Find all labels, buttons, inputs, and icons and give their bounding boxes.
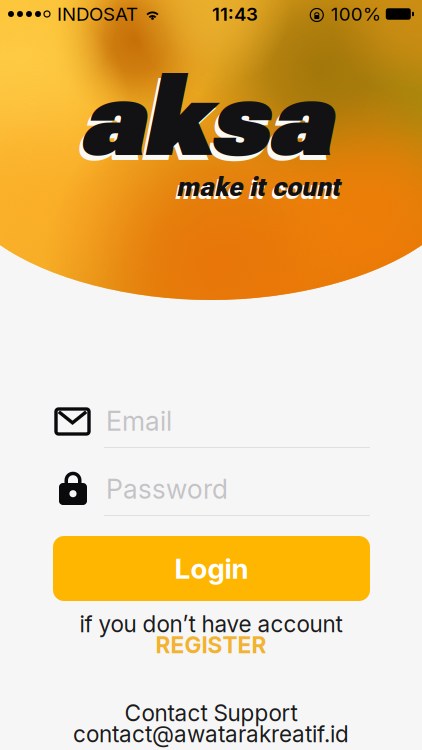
staticText: if you don’t have account	[79, 610, 342, 638]
staticText: 100%	[331, 3, 381, 25]
staticText: Login	[174, 552, 248, 585]
staticText: Contact Support	[124, 699, 297, 727]
staticText: make it count	[176, 171, 340, 203]
staticText: contact@awatarakreatif.id	[73, 720, 349, 748]
button[interactable]: REGISTER	[0, 634, 422, 656]
staticText: make it count	[174, 174, 338, 206]
staticText: Email	[106, 405, 172, 437]
staticText: INDOSAT	[57, 3, 138, 25]
staticText: aksa	[75, 54, 327, 188]
staticText: 11:43	[212, 3, 258, 25]
staticText: REGISTER	[155, 631, 266, 659]
staticText: aksa	[79, 49, 331, 183]
staticText: Password	[106, 473, 228, 505]
button[interactable]: Login	[53, 536, 370, 601]
